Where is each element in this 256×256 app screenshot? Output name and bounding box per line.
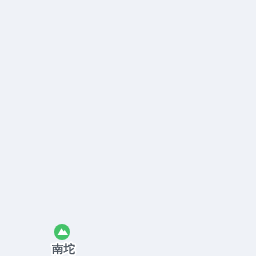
staticText: 南坨: [52, 242, 75, 256]
staticText: 南坨: [52, 242, 75, 256]
button[interactable]: 南坨 mountain peak: [46, 222, 78, 254]
staticText: 南坨: [52, 242, 75, 256]
